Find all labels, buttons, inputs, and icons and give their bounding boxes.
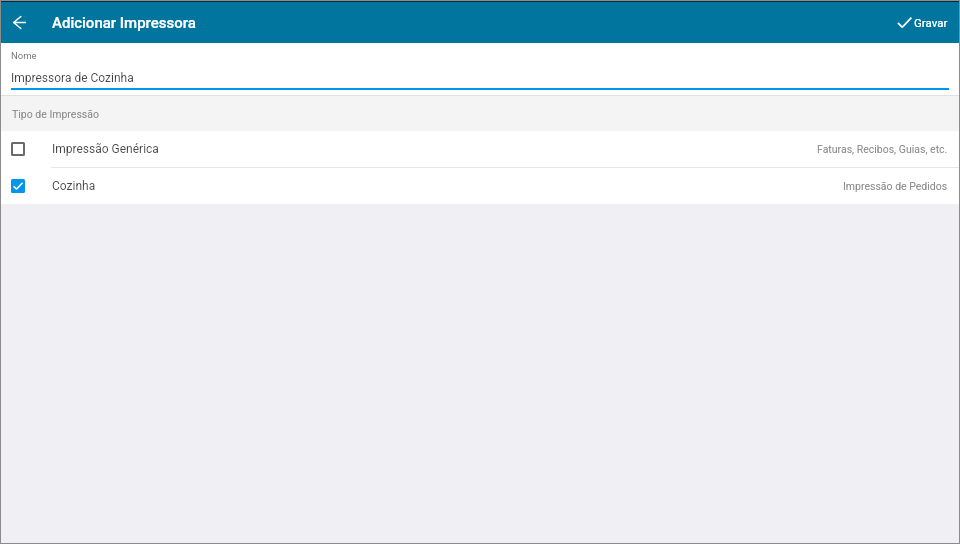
staticText: Faturas, Recibos, Guias, etc.: [817, 143, 948, 155]
button[interactable]: Nome: [1, 43, 959, 95]
button[interactable]: Impressão Genérica: [1, 131, 959, 167]
staticText: Nome: [11, 50, 37, 61]
staticText: Gravar: [914, 16, 948, 29]
button[interactable]: Back: [1, 2, 37, 43]
staticText: Impressora de Cozinha: [11, 71, 134, 85]
staticText: Cozinha: [52, 179, 96, 193]
button[interactable]: Gravar: [885, 2, 959, 43]
staticText: Impressão Genérica: [52, 142, 159, 156]
staticText: Adicionar Impressora: [52, 14, 196, 32]
button[interactable]: Cozinha: [1, 168, 959, 204]
staticText: Impressão de Pedidos: [843, 180, 948, 192]
staticText: Tipo de Impressão: [12, 108, 99, 120]
